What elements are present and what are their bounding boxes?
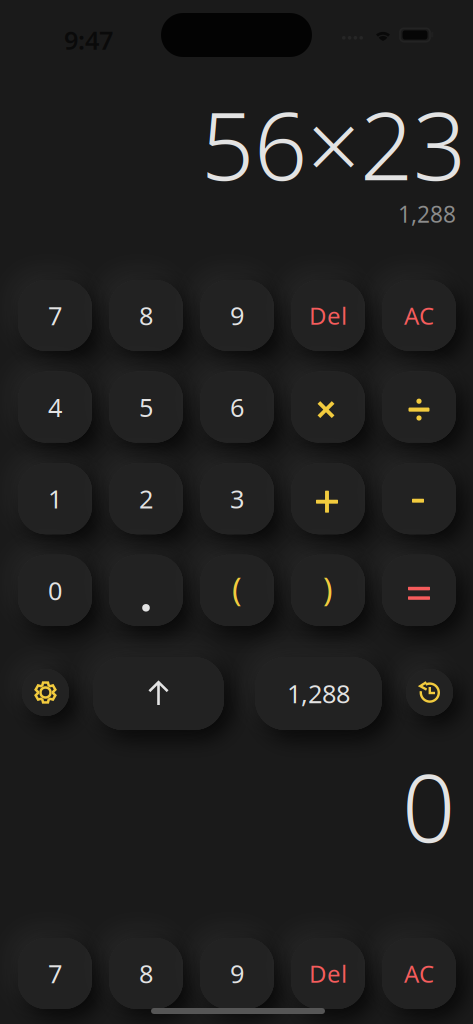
- button[interactable]: Minus: [382, 463, 456, 534]
- button[interactable]: Multiply: [291, 372, 365, 443]
- staticText: 1,288: [398, 199, 456, 229]
- staticText: 0: [48, 573, 62, 607]
- button[interactable]: AC: [382, 938, 456, 1009]
- button[interactable]: Settings: [22, 669, 69, 716]
- button[interactable]: 3: [200, 463, 274, 534]
- staticText: 1,288: [287, 677, 350, 710]
- button[interactable]: 7: [18, 280, 92, 351]
- staticText: AC: [404, 300, 434, 331]
- staticText: 1: [48, 482, 62, 515]
- button[interactable]: 0: [18, 555, 92, 626]
- button[interactable]: Insert above: [93, 657, 224, 730]
- staticText: 8: [139, 957, 153, 990]
- staticText: Del: [309, 300, 347, 331]
- button[interactable]: 7: [18, 938, 92, 1009]
- staticText: 5: [139, 390, 153, 424]
- button[interactable]: 6: [200, 372, 274, 443]
- staticText: AC: [404, 958, 434, 989]
- button[interactable]: Equals: [382, 555, 456, 626]
- staticText: ): [323, 568, 333, 611]
- button[interactable]: 2: [109, 463, 183, 534]
- button[interactable]: Decimal point: [109, 555, 183, 626]
- button[interactable]: 8: [109, 280, 183, 351]
- staticText: 9: [230, 957, 244, 990]
- staticText: 3: [230, 482, 244, 515]
- staticText: Del: [309, 958, 347, 989]
- button[interactable]: Plus: [291, 463, 365, 534]
- staticText: 0: [402, 744, 455, 868]
- staticText: 9: [230, 299, 244, 332]
- button[interactable]: 9: [200, 938, 274, 1009]
- staticText: (: [232, 568, 242, 611]
- button[interactable]: 1: [18, 463, 92, 534]
- staticText: 56×23: [201, 82, 466, 206]
- button[interactable]: Divide: [382, 372, 456, 443]
- button[interactable]: Del: [291, 938, 365, 1009]
- button[interactable]: ): [291, 555, 365, 626]
- staticText: 7: [48, 299, 62, 332]
- staticText: 2: [139, 482, 153, 515]
- button[interactable]: 1,288: [255, 657, 382, 730]
- staticText: 9:47: [64, 23, 113, 57]
- button[interactable]: Del: [291, 280, 365, 351]
- button[interactable]: 4: [18, 372, 92, 443]
- staticText: 6: [230, 390, 244, 424]
- button[interactable]: History: [406, 669, 453, 716]
- button[interactable]: AC: [382, 280, 456, 351]
- staticText: 4: [48, 390, 62, 424]
- button[interactable]: 5: [109, 372, 183, 443]
- button[interactable]: 9: [200, 280, 274, 351]
- staticText: 8: [139, 299, 153, 332]
- button[interactable]: (: [200, 555, 274, 626]
- staticText: 7: [48, 957, 62, 990]
- button[interactable]: 8: [109, 938, 183, 1009]
